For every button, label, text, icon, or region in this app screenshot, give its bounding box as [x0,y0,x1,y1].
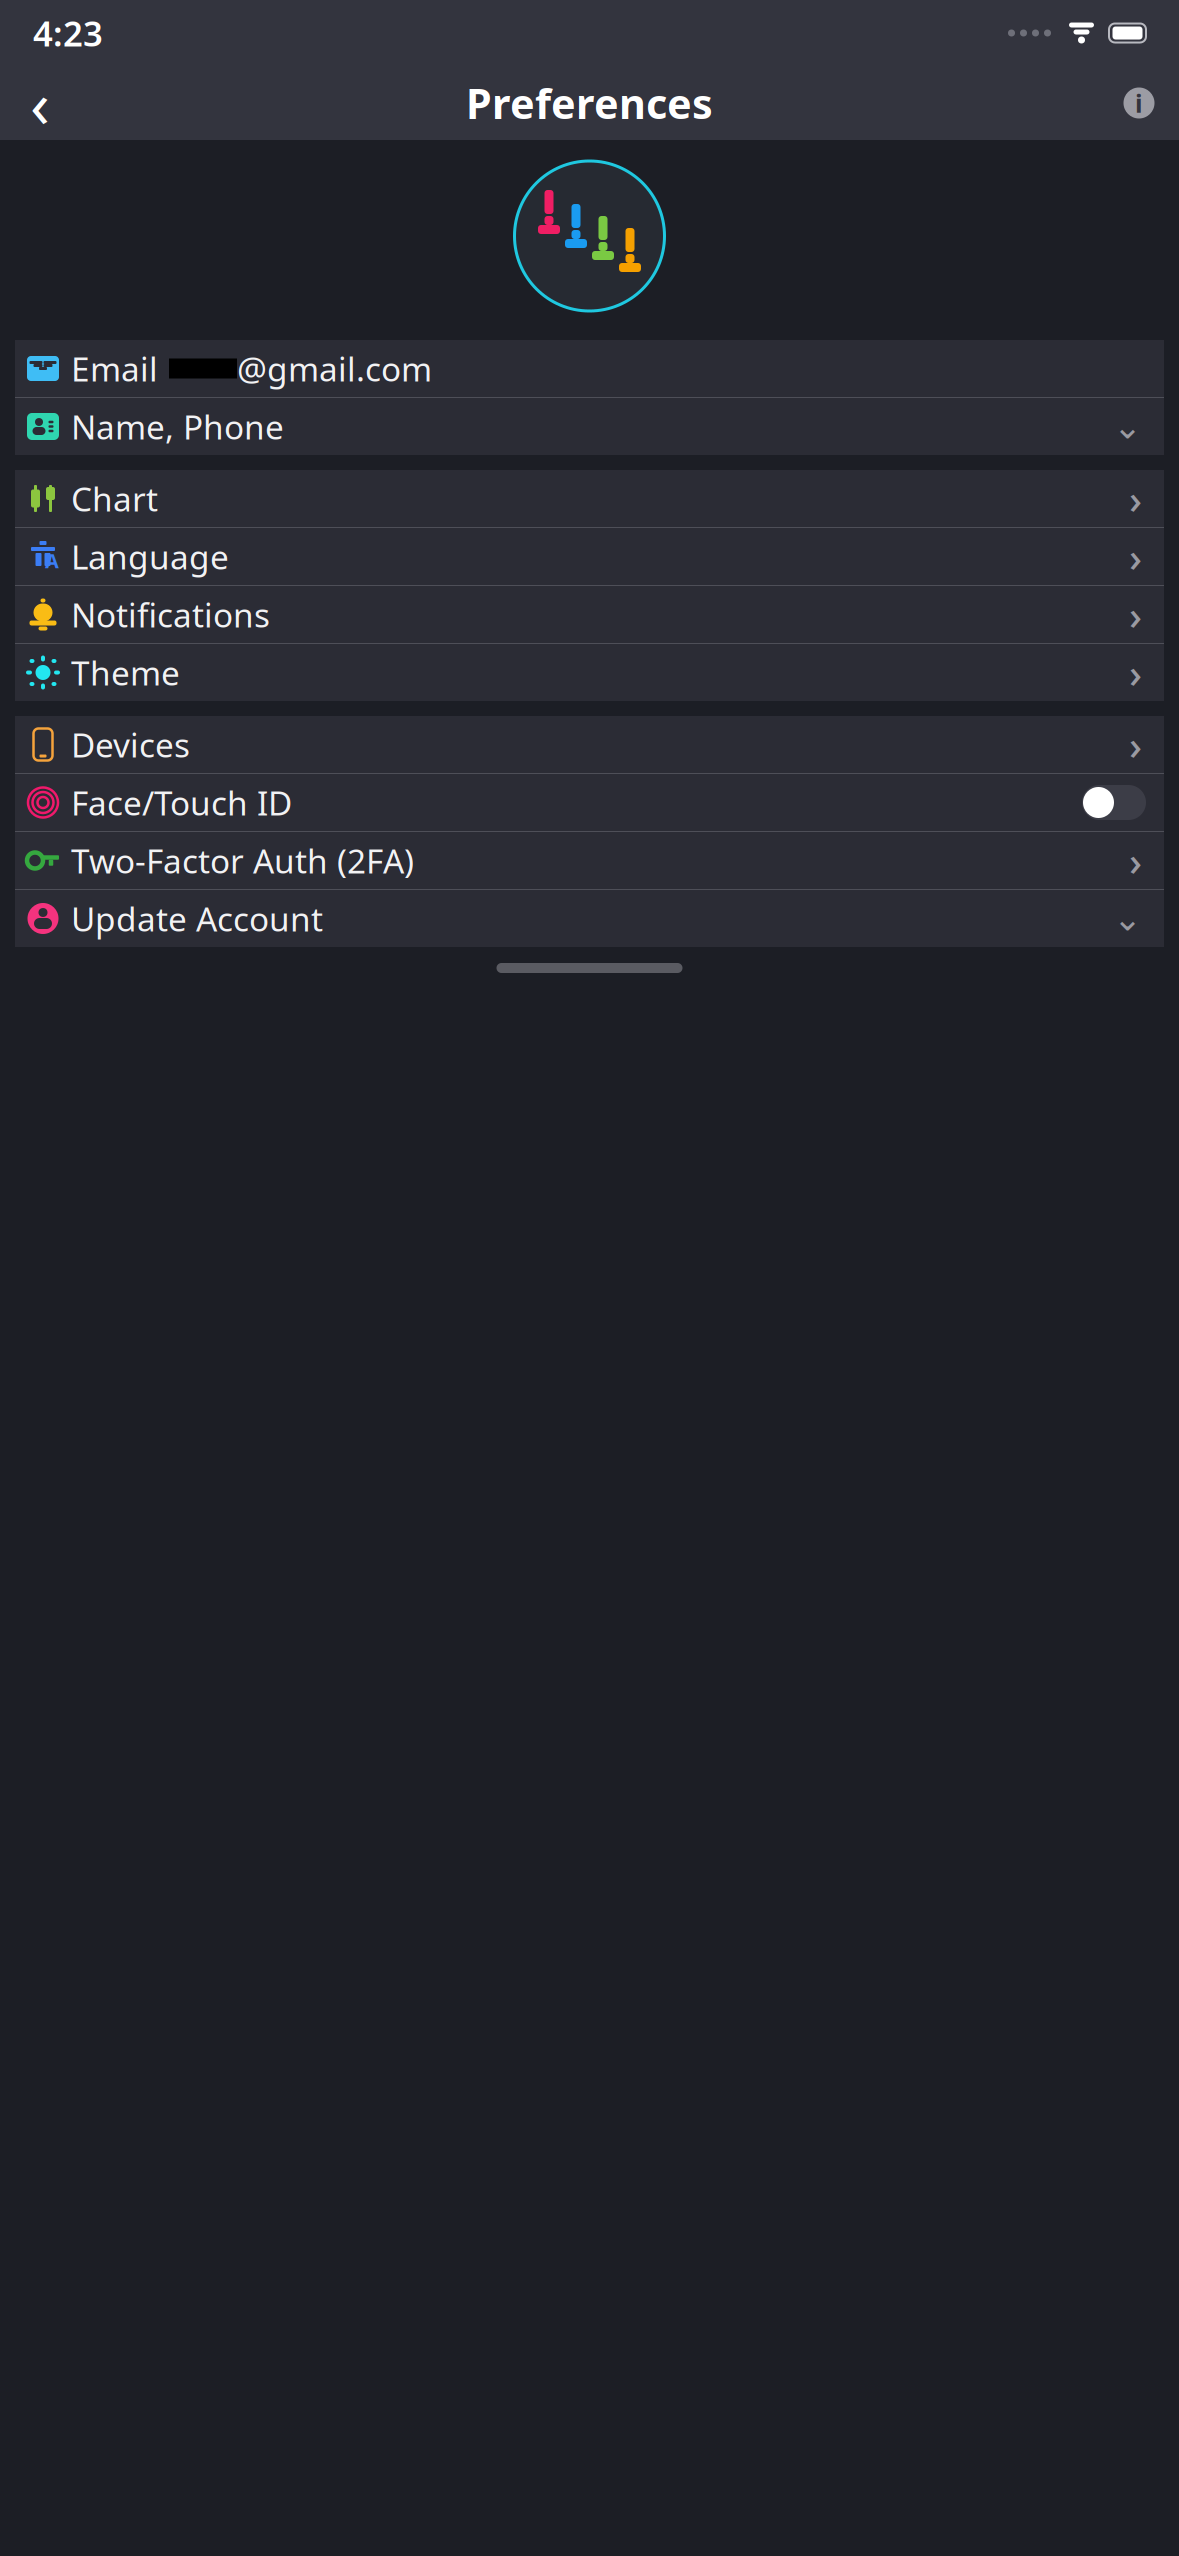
staticText: › [1129,588,1142,641]
staticText: › [1129,646,1142,699]
staticText: ⌄ [1113,899,1142,938]
staticText: Two-Factor Auth (2FA) [71,838,414,883]
staticText: Chart [71,476,158,521]
staticText: › [1129,718,1142,771]
button[interactable]: Notifications [15,586,1164,643]
staticText: Face/Touch ID [71,780,292,825]
button[interactable]: A [15,528,1164,585]
button[interactable]: Devices [15,716,1164,773]
button[interactable]: Face/Touch ID [15,774,1164,831]
staticText: › [1129,530,1142,583]
staticText: i [1135,86,1143,120]
button[interactable]: Email [15,340,1164,397]
staticText: Devices [71,722,190,767]
button[interactable]: Information [1110,76,1168,130]
staticText: Language [71,534,229,579]
button[interactable]: Two-Factor Auth (2FA) [15,832,1164,889]
button[interactable]: Chart [15,470,1164,527]
button[interactable]: Update Account [15,890,1164,947]
staticText: A [45,547,59,574]
button[interactable]: Name, Phone [15,398,1164,455]
staticText: Name, Phone [71,404,284,449]
button[interactable]: Theme [15,644,1164,701]
staticText: Email [71,346,158,391]
staticText: › [1129,834,1142,887]
staticText: Update Account [71,896,323,941]
button[interactable]: Back [11,76,69,130]
staticText: ‹ [30,60,50,145]
staticText: Notifications [71,592,270,637]
staticText: Preferences [466,76,713,130]
staticText: @gmail.com [237,346,432,391]
staticText: Theme [71,650,180,695]
staticText: 4:23 [33,10,103,56]
staticText: ⌄ [1113,407,1142,446]
staticText: › [1129,472,1142,525]
